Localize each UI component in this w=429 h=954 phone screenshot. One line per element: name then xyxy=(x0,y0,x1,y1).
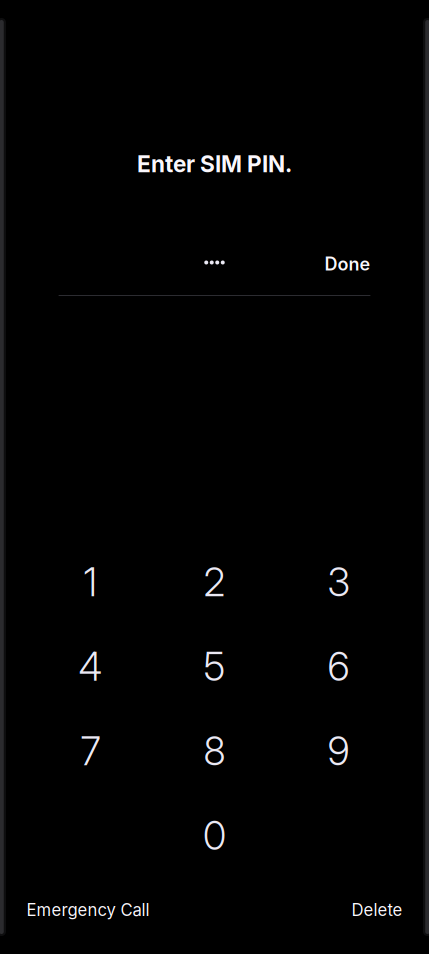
button[interactable]: 7 xyxy=(28,709,152,793)
button[interactable]: 5 xyxy=(152,624,276,709)
staticText: Enter SIM PIN. xyxy=(137,150,292,178)
button[interactable]: 6 xyxy=(276,624,400,709)
staticText: 6 xyxy=(327,643,349,690)
staticText: Delete xyxy=(351,900,402,920)
button[interactable]: 0 xyxy=(152,793,276,878)
button[interactable]: 3 xyxy=(276,540,400,624)
staticText: Done xyxy=(324,253,370,275)
button[interactable]: 9 xyxy=(276,709,400,793)
staticText: 5 xyxy=(203,643,225,690)
button[interactable]: 1 xyxy=(28,540,152,624)
staticText: 0 xyxy=(203,812,226,859)
button[interactable]: 4 xyxy=(28,624,152,709)
staticText: 8 xyxy=(203,728,225,775)
staticText: 9 xyxy=(327,728,349,775)
button[interactable]: 8 xyxy=(152,709,276,793)
button[interactable]: Delete xyxy=(351,899,402,921)
staticText: 4 xyxy=(78,643,102,690)
button[interactable]: 2 xyxy=(152,540,276,624)
staticText: 1 xyxy=(83,559,97,606)
staticText: 3 xyxy=(327,559,349,606)
staticText: 7 xyxy=(80,728,100,775)
staticText: Emergency Call xyxy=(26,900,149,920)
button[interactable]: Emergency Call xyxy=(26,899,149,921)
button[interactable]: Done xyxy=(324,251,370,277)
staticText: 2 xyxy=(203,559,225,606)
